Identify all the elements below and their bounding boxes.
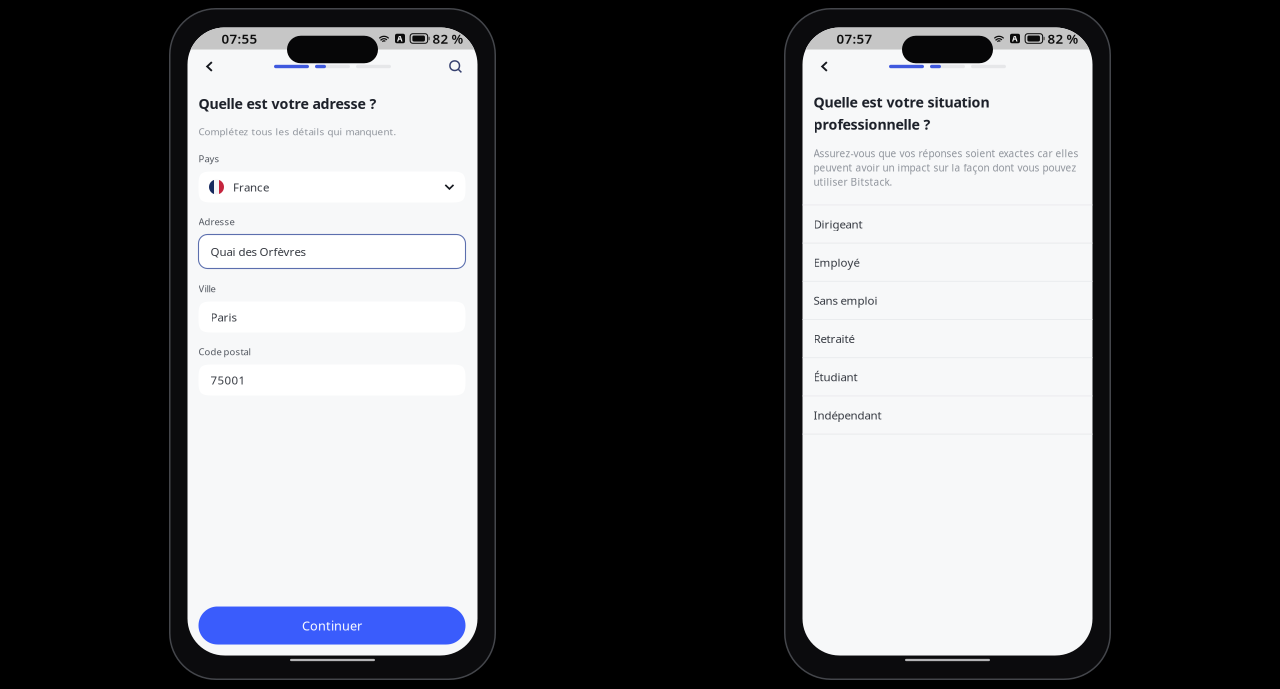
- button[interactable]: Retraité: [802, 320, 1092, 358]
- staticText: Pays: [198, 152, 219, 165]
- staticText: Ville: [198, 282, 215, 295]
- button[interactable]: 75001: [198, 364, 465, 395]
- staticText: Employé: [813, 254, 859, 270]
- staticText: Sans emploi: [813, 293, 877, 308]
- button[interactable]: Paris: [198, 301, 465, 332]
- button[interactable]: Employé: [802, 243, 1092, 282]
- button[interactable]: Quai des Orfèvres: [198, 234, 465, 268]
- staticText: Code postal: [198, 345, 250, 358]
- staticText: 82 %: [432, 29, 463, 48]
- staticText: Assurez-vous que vos réponses soient exa…: [813, 146, 1078, 189]
- button[interactable]: Dirigeant: [802, 205, 1092, 243]
- button[interactable]: Indépendant: [802, 396, 1092, 434]
- staticText: Complétez tous les détails qui manquent.: [198, 125, 396, 138]
- staticText: Adresse: [198, 215, 234, 228]
- staticText: Indépendant: [813, 407, 881, 423]
- button[interactable]: Sans emploi: [802, 282, 1092, 320]
- staticText: 07:57: [836, 29, 872, 48]
- button[interactable]: Étudiant: [802, 358, 1092, 396]
- staticText: Quai des Orfèvres: [210, 244, 305, 259]
- staticText: Étudiant: [813, 369, 857, 385]
- button[interactable]: Search: [442, 53, 468, 79]
- staticText: Quelle est votre situation professionnel…: [813, 92, 989, 134]
- button[interactable]: Continuer: [198, 606, 465, 644]
- staticText: 82 %: [1047, 29, 1078, 48]
- button[interactable]: Back: [811, 53, 837, 79]
- staticText: Paris: [210, 309, 236, 325]
- staticText: A: [397, 33, 403, 44]
- button[interactable]: Back: [196, 53, 222, 79]
- button[interactable]: France: [198, 171, 465, 202]
- staticText: Retraité: [813, 331, 854, 346]
- staticText: 75001: [210, 372, 245, 388]
- staticText: Quelle est votre adresse ?: [198, 94, 376, 113]
- staticText: A: [1012, 33, 1018, 44]
- staticText: 07:55: [221, 29, 257, 48]
- staticText: France: [233, 179, 269, 195]
- staticText: Dirigeant: [813, 216, 862, 232]
- staticText: Continuer: [302, 617, 362, 634]
